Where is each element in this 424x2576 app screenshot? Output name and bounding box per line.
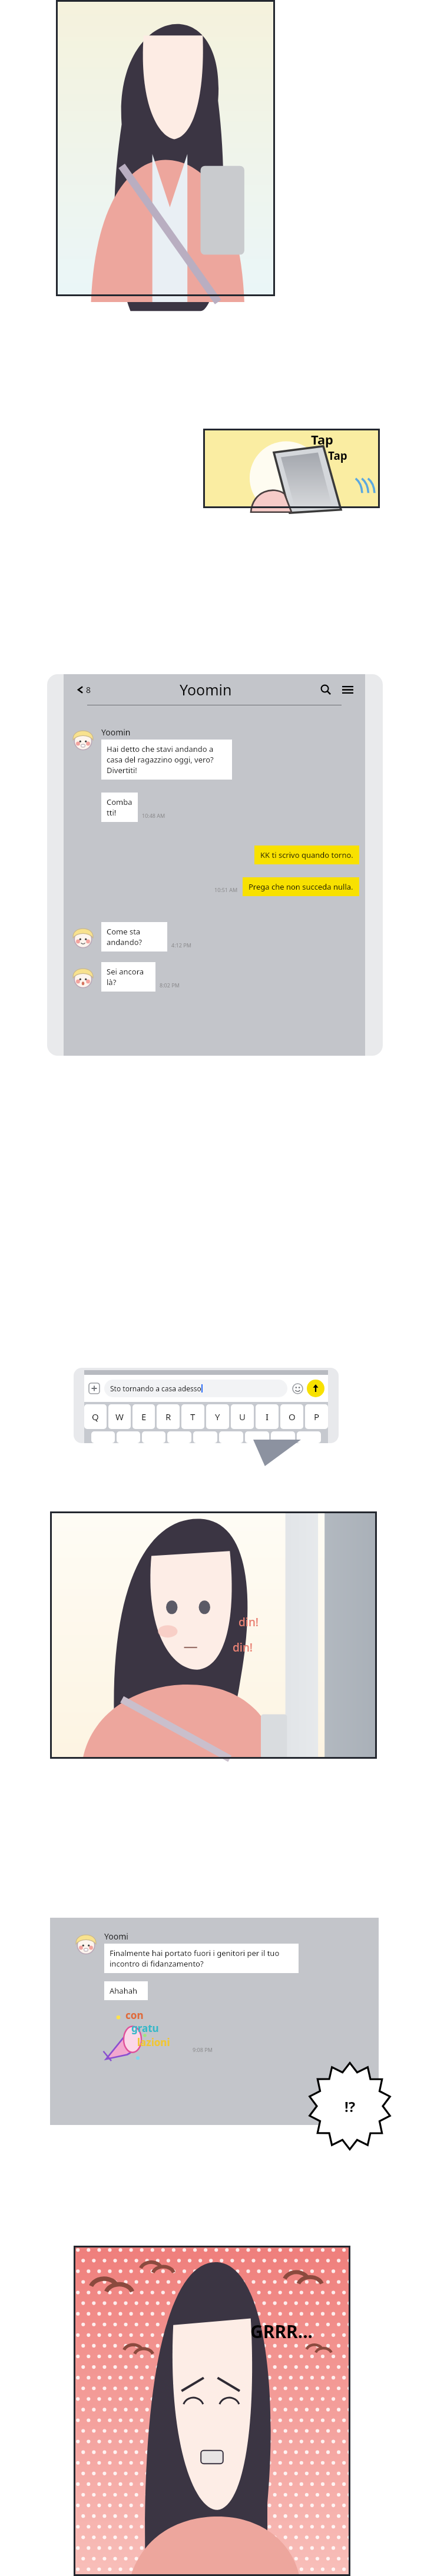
button[interactable]: Q xyxy=(84,1404,107,1429)
staticText: Tap xyxy=(311,430,334,448)
button[interactable]: Send xyxy=(307,1380,324,1397)
staticText: !? xyxy=(344,2097,356,2116)
button[interactable]: Hai detto che stavi andando a casa del r… xyxy=(101,740,232,780)
staticText: Tap xyxy=(328,448,347,463)
button[interactable]: Y xyxy=(206,1404,229,1429)
staticText: gratu xyxy=(131,2021,159,2035)
staticText: Sto tornando a casa adesso xyxy=(110,1384,201,1393)
button[interactable]: Emoji xyxy=(291,1382,304,1395)
staticText: din! xyxy=(238,1614,259,1630)
staticText: R xyxy=(165,1411,171,1423)
button[interactable]: Prega che non succeda nulla. xyxy=(243,877,359,896)
staticText: O xyxy=(289,1411,296,1423)
staticText: W xyxy=(115,1411,124,1423)
button[interactable]: O xyxy=(280,1404,303,1429)
staticText: din! xyxy=(233,1640,253,1655)
staticText: Sei ancora là? xyxy=(107,966,150,987)
staticText: Come sta andando? xyxy=(107,926,162,947)
button[interactable]: W xyxy=(108,1404,131,1429)
button[interactable]: R xyxy=(157,1404,180,1429)
button[interactable]: Come sta andando? xyxy=(101,922,167,952)
staticText: E xyxy=(141,1411,147,1423)
staticText: I xyxy=(266,1411,269,1423)
staticText: Y xyxy=(215,1411,220,1423)
staticText: Yoomin xyxy=(180,679,232,699)
button[interactable]: Combatti! xyxy=(101,793,138,822)
button[interactable]: Sei ancora là? xyxy=(101,962,155,992)
button[interactable]: KK ti scrivo quando torno. xyxy=(254,846,359,864)
staticText: Hai detto che stavi andando a casa del r… xyxy=(107,744,227,775)
staticText: P xyxy=(314,1411,320,1423)
button[interactable]: Ahahah xyxy=(104,1981,148,2000)
staticText: Finalmente hai portato fuori i genitori … xyxy=(110,1948,293,1969)
button[interactable]: Sto tornando a casa adesso xyxy=(104,1380,287,1397)
staticText: 9:08 PM xyxy=(193,2046,213,2053)
staticText: Ahahah xyxy=(110,1985,137,1996)
staticText: Prega che non succeda nulla. xyxy=(249,881,353,892)
button[interactable]: U xyxy=(231,1404,254,1429)
staticText: Combatti! xyxy=(107,797,132,818)
staticText: KK ti scrivo quando torno. xyxy=(260,850,353,860)
staticText: 8:02 PM xyxy=(160,982,180,989)
button[interactable]: P xyxy=(305,1404,328,1429)
button[interactable]: E xyxy=(132,1404,155,1429)
staticText: lazioni xyxy=(137,2035,170,2049)
button[interactable]: Search xyxy=(319,682,333,697)
button[interactable]: Add attachment xyxy=(88,1382,101,1395)
staticText: Q xyxy=(92,1411,99,1423)
staticText: Yoomin xyxy=(101,727,131,738)
button[interactable]: I xyxy=(256,1404,279,1429)
staticText: U xyxy=(239,1411,246,1423)
button[interactable]: Menu xyxy=(340,682,355,697)
staticText: 10:51 AM xyxy=(214,886,238,893)
button[interactable]: Finalmente hai portato fuori i genitori … xyxy=(104,1944,299,1973)
staticText: GRRR... xyxy=(250,2319,313,2343)
button[interactable]: Back xyxy=(74,682,94,698)
staticText: T xyxy=(190,1411,196,1423)
staticText: 4:12 PM xyxy=(171,941,191,949)
staticText: Yoomi xyxy=(104,1931,128,1942)
staticText: 8 xyxy=(86,684,91,695)
button[interactable]: T xyxy=(181,1404,204,1429)
staticText: con xyxy=(125,2008,144,2022)
staticText: 10:48 AM xyxy=(142,812,165,819)
